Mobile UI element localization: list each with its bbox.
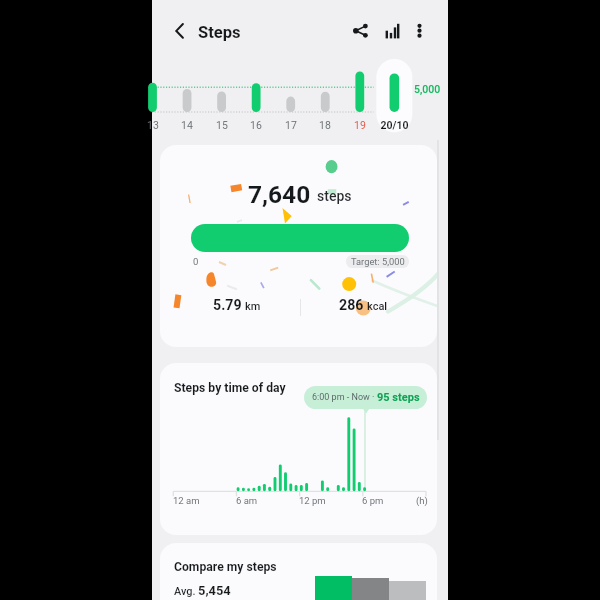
button[interactable]: 15 <box>202 118 242 132</box>
button[interactable]: Share <box>345 13 376 44</box>
staticText: 19 <box>354 119 366 131</box>
staticText: 17 <box>285 119 297 131</box>
staticText: 18 <box>319 119 331 131</box>
staticText: 5.79 <box>213 297 242 314</box>
staticText: 7,640 <box>248 180 311 209</box>
button[interactable]: 18 <box>305 118 345 132</box>
staticText: 14 <box>181 119 193 131</box>
button[interactable]: Compare my steps <box>160 543 437 600</box>
staticText: 16 <box>250 119 262 131</box>
staticText: 6:00 pm - Now · <box>312 392 377 403</box>
staticText: (h) <box>416 495 428 506</box>
button[interactable]: More options <box>406 13 434 41</box>
button[interactable]: 14 <box>167 118 207 132</box>
button[interactable]: Steps <box>198 23 241 42</box>
button[interactable]: 16 <box>236 118 276 132</box>
staticText: 12 pm <box>299 495 326 506</box>
staticText: 15 <box>216 119 228 131</box>
button[interactable]: Steps by time of day <box>160 363 437 535</box>
button[interactable]: 17 <box>271 118 311 132</box>
button[interactable]: 7,640 <box>160 145 437 347</box>
button[interactable]: 19 <box>340 118 380 132</box>
staticText: 13 <box>147 119 159 131</box>
staticText: 0 <box>193 256 199 267</box>
staticText: 95 steps <box>377 391 420 404</box>
staticText: 6 pm <box>362 495 384 506</box>
staticText: km <box>245 300 261 313</box>
button[interactable]: 20/10 <box>374 118 414 132</box>
button[interactable]: Back <box>158 9 201 52</box>
button[interactable]: 13 <box>133 118 173 132</box>
staticText: Steps <box>198 23 241 42</box>
staticText: 20/10 <box>380 119 409 131</box>
staticText: kcal <box>367 300 388 313</box>
button[interactable]: View chart <box>378 13 409 44</box>
staticText: Avg. <box>174 585 196 598</box>
staticText: Steps by time of day <box>174 381 286 395</box>
staticText: steps <box>317 188 352 204</box>
staticText: 5,454 <box>198 583 231 598</box>
staticText: 286 <box>339 297 364 314</box>
staticText: 6 am <box>236 495 258 506</box>
staticText: Compare my steps <box>174 560 277 574</box>
staticText: Target: 5,000 <box>351 256 405 267</box>
staticText: 5,000 <box>414 83 441 95</box>
staticText: 12 am <box>173 495 200 506</box>
